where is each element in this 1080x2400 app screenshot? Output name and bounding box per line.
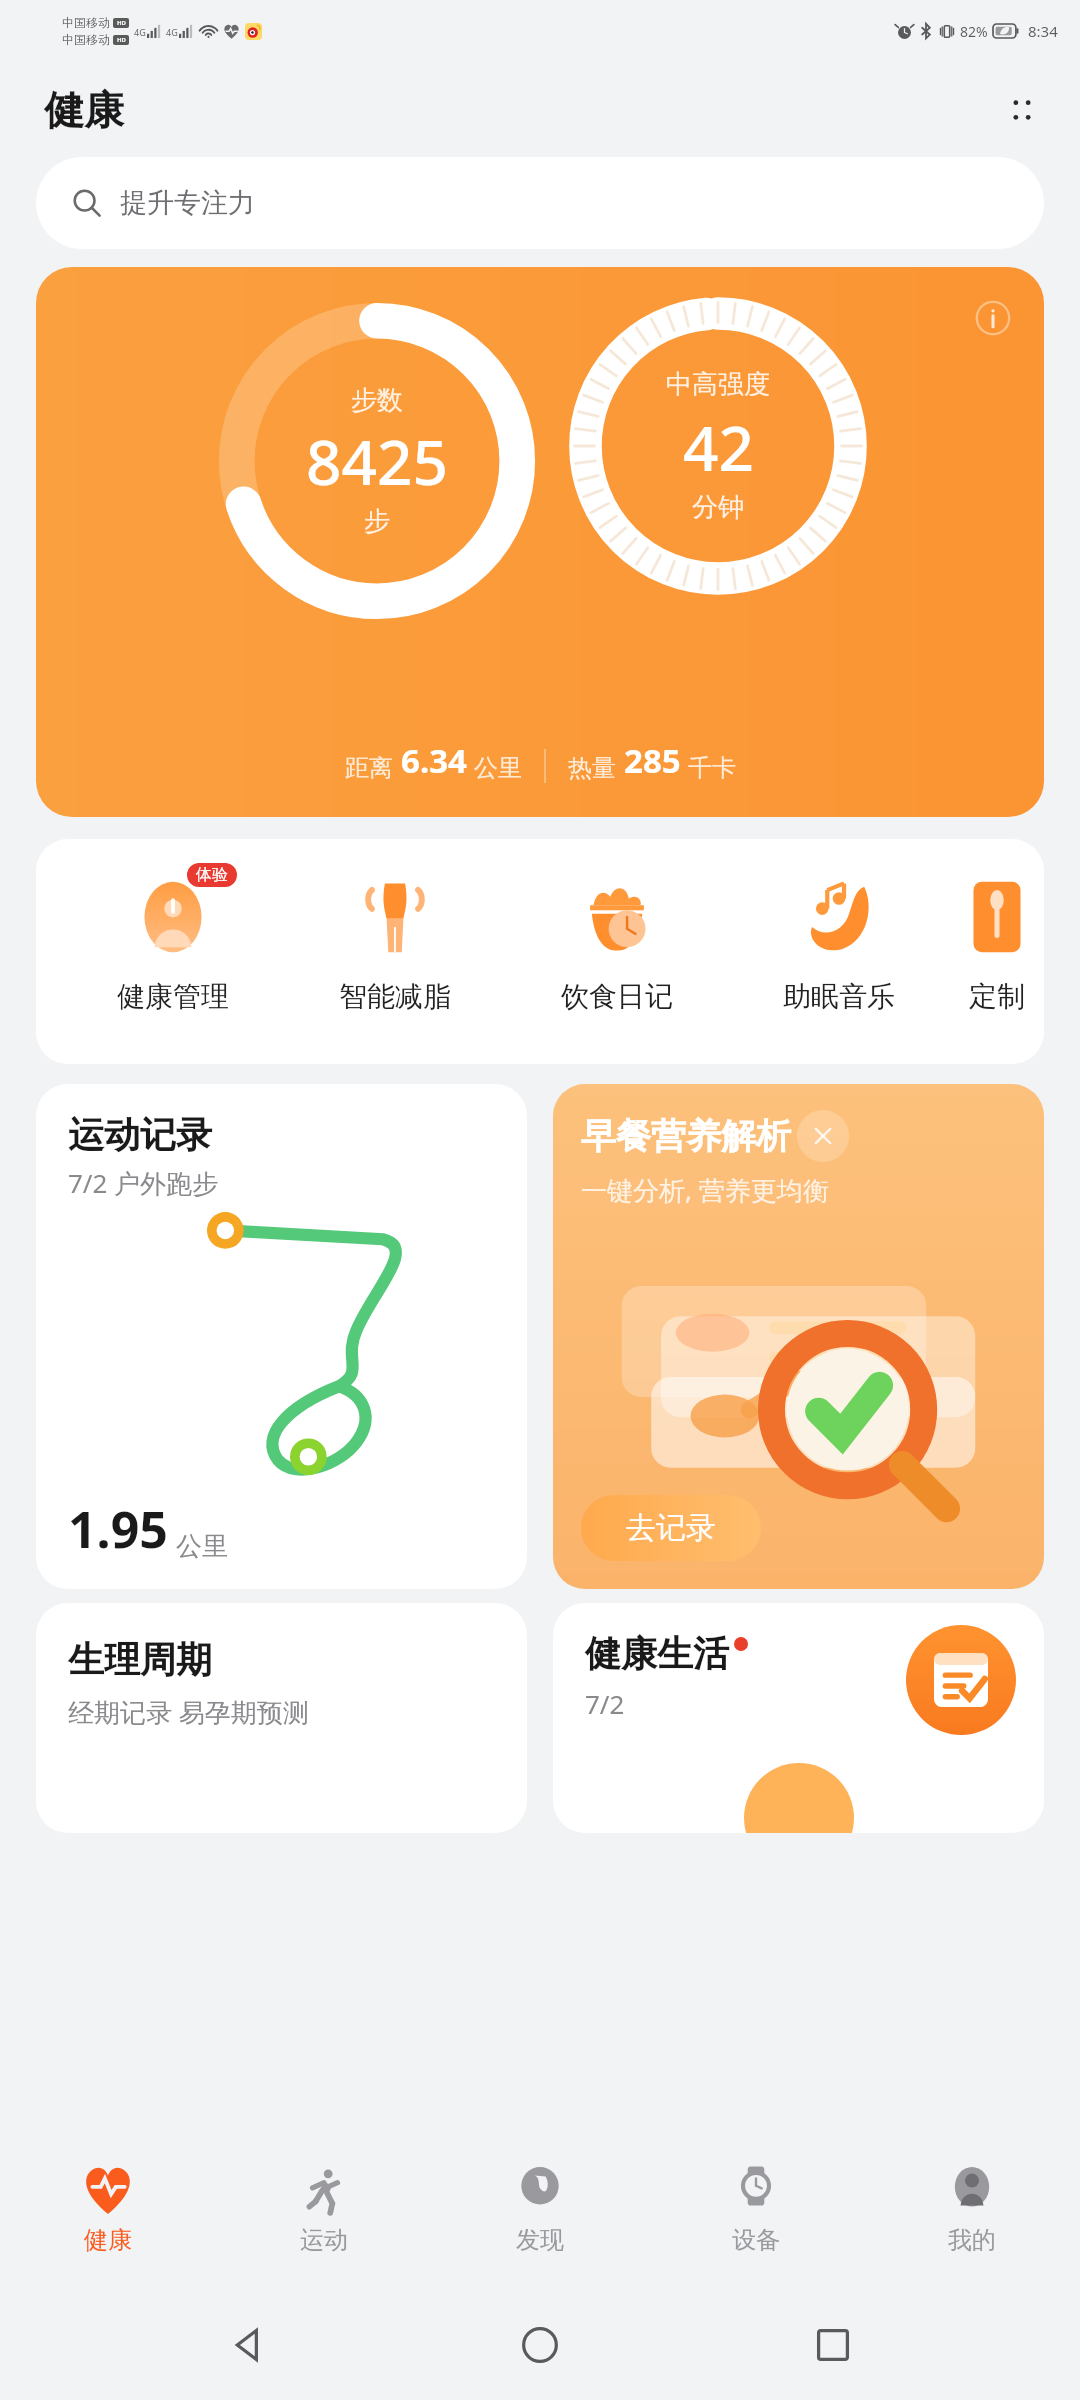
staticText: 生理周期 xyxy=(68,1637,212,1682)
button[interactable]: 生理周期 xyxy=(36,1603,527,1833)
button[interactable]: 智能减脂 xyxy=(284,869,506,1014)
button[interactable]: 助眠音乐 xyxy=(728,869,950,1014)
staticText: 公里 xyxy=(176,1530,228,1563)
button[interactable]: 发现 xyxy=(432,2130,648,2290)
staticText: 去记录 xyxy=(626,1509,716,1547)
staticText: 健康 xyxy=(44,85,124,135)
button[interactable]: 健康 xyxy=(0,2130,216,2290)
staticText: 步 xyxy=(364,505,390,538)
staticText: 距离 xyxy=(345,753,393,783)
button[interactable]: Info xyxy=(36,267,1044,817)
staticText: 4G xyxy=(134,26,146,38)
staticText: 我的 xyxy=(948,2225,996,2255)
button[interactable]: Recents xyxy=(788,2300,878,2390)
staticText: 运动 xyxy=(300,2225,348,2255)
staticText: 8:34 xyxy=(1028,21,1058,41)
button[interactable]: 健康生活 xyxy=(553,1603,1044,1833)
button[interactable]: More options xyxy=(994,82,1050,138)
staticText: 智能减脂 xyxy=(339,979,451,1014)
staticText: 4G xyxy=(166,26,178,38)
button[interactable]: 我的 xyxy=(864,2130,1080,2290)
staticText: 285 xyxy=(624,738,681,783)
staticText: 千卡 xyxy=(688,753,736,783)
staticText: 1.95 xyxy=(68,1495,168,1563)
button[interactable]: 运动 xyxy=(216,2130,432,2290)
staticText: 42 xyxy=(683,405,754,489)
staticText: 一键分析, 营养更均衡 xyxy=(581,1172,829,1208)
staticText: 早餐营养解析 xyxy=(581,1114,791,1158)
staticText: 中国移动 xyxy=(62,15,110,30)
staticText: 中国移动 xyxy=(62,32,110,47)
staticText: 发现 xyxy=(516,2225,564,2255)
staticText: 中高强度 xyxy=(666,368,770,401)
button[interactable]: Back xyxy=(203,2300,293,2390)
button[interactable]: Home xyxy=(495,2300,585,2390)
staticText: 健康生活 xyxy=(585,1631,729,1676)
staticText: 7/2 户外跑步 xyxy=(68,1165,219,1201)
staticText: HD xyxy=(117,19,126,27)
staticText: 健康管理 xyxy=(117,979,229,1014)
staticText: 设备 xyxy=(732,2225,780,2255)
button[interactable]: 定制 xyxy=(950,869,1044,1014)
staticText: 定制 xyxy=(969,979,1025,1014)
staticText: 公里 xyxy=(474,753,522,783)
button[interactable]: 提升专注力 xyxy=(36,157,1044,249)
staticText: 步数 xyxy=(351,384,403,417)
staticText: 运动记录 xyxy=(68,1112,212,1157)
button[interactable]: 饮食日记 xyxy=(506,869,728,1014)
button[interactable]: 运动记录 xyxy=(36,1084,527,1589)
button[interactable]: 体验 xyxy=(62,869,284,1014)
button[interactable]: Info xyxy=(964,289,1022,347)
staticText: 分钟 xyxy=(692,491,744,524)
staticText: 经期记录 易孕期预测 xyxy=(68,1694,309,1730)
staticText: 提升专注力 xyxy=(120,186,255,220)
button[interactable]: 去记录 xyxy=(581,1495,761,1561)
staticText: 82% xyxy=(960,22,988,41)
button[interactable]: 早餐营养解析 xyxy=(553,1084,1044,1589)
staticText: 热量 xyxy=(568,753,616,783)
staticText: 6.34 xyxy=(401,738,467,783)
staticText: 8425 xyxy=(306,419,448,503)
button[interactable]: 设备 xyxy=(648,2130,864,2290)
staticText: 7/2 xyxy=(585,1686,625,1721)
staticText: 体验 xyxy=(196,865,228,885)
staticText: 健康 xyxy=(84,2225,132,2255)
staticText: 助眠音乐 xyxy=(783,979,895,1014)
staticText: HD xyxy=(117,36,126,44)
staticText: 饮食日记 xyxy=(561,979,673,1014)
button[interactable]: Close xyxy=(797,1110,849,1162)
